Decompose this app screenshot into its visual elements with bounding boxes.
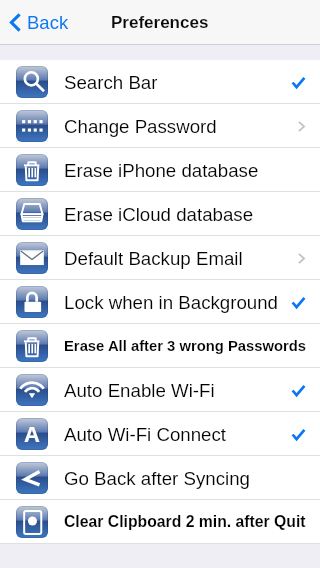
button[interactable]: Back [0,0,79,44]
staticText: Auto Wi-Fi Connect [64,424,292,445]
button[interactable]: Erase iCloud database [0,192,320,236]
staticText: Default Backup Email [64,248,298,269]
staticText: A [24,422,40,447]
staticText: Erase iCloud database [64,204,310,225]
staticText: Search Bar [64,72,292,93]
button[interactable]: Erase iPhone database [0,148,320,192]
button[interactable]: Default Backup Email [0,236,320,280]
button[interactable]: Erase All after 3 wrong Passwords [0,324,320,368]
staticText: Erase iPhone database [64,160,310,181]
staticText: Change Password [64,116,298,137]
button[interactable]: Lock when in Background [0,280,320,324]
staticText: Lock when in Background [64,292,292,313]
staticText: Erase All after 3 wrong Passwords [64,338,310,355]
staticText: Go Back after Syncing [64,468,310,489]
staticText: Auto Enable Wi-Fi [64,380,292,401]
staticText: Clear Clipboard 2 min. after Quit [64,513,310,531]
button[interactable]: A [0,412,320,456]
button[interactable]: Change Password [0,104,320,148]
staticText: Preferences [111,13,209,32]
button[interactable]: Go Back after Syncing [0,456,320,500]
button[interactable]: Auto Enable Wi-Fi [0,368,320,412]
button[interactable]: Search Bar [0,60,320,104]
staticText: Back [27,12,69,33]
button[interactable]: Clear Clipboard 2 min. after Quit [0,500,320,544]
